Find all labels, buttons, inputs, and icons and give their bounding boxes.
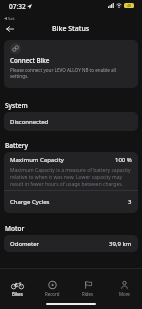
staticText: Disconnected [10,118,49,126]
button[interactable]: Bikes [0,281,35,297]
button[interactable]: Disconnected [4,118,138,126]
button[interactable]: Record [35,281,70,297]
staticText: 3 [128,198,132,206]
staticText: Bike Status [52,24,90,34]
button[interactable]: Charge Cycles [4,191,138,213]
staticText: Odometer [10,240,40,248]
staticText: Charge Cycles [10,198,50,206]
staticText: Motor [5,224,25,233]
staticText: Please connect your LEVO ALLOY NB to ena… [10,67,133,79]
button[interactable]: Maximum Capacity [4,152,138,167]
staticText: Connect Bike [10,56,50,65]
staticText: 39,9 km [109,240,132,248]
staticText: 100 % [115,156,132,164]
button[interactable]: Odometer [4,240,138,248]
staticText: Maximum Capacity is a measure of battery… [10,167,132,188]
staticText: 5ak [8,16,15,21]
button[interactable]: Connect Bike [4,40,138,88]
staticText: System [5,101,28,110]
staticText: Bikes [12,291,23,297]
staticText: 07:32 [9,2,26,11]
staticText: Rides [82,291,94,297]
button[interactable]: Rides [70,281,106,297]
staticText: Maximum Capacity [10,156,64,164]
staticText: More [119,291,130,297]
staticText: 48 [127,3,132,8]
button[interactable]: Back [0,22,20,36]
staticText: Record [45,291,60,297]
button[interactable]: More [106,281,142,297]
staticText: Battery [5,141,28,150]
